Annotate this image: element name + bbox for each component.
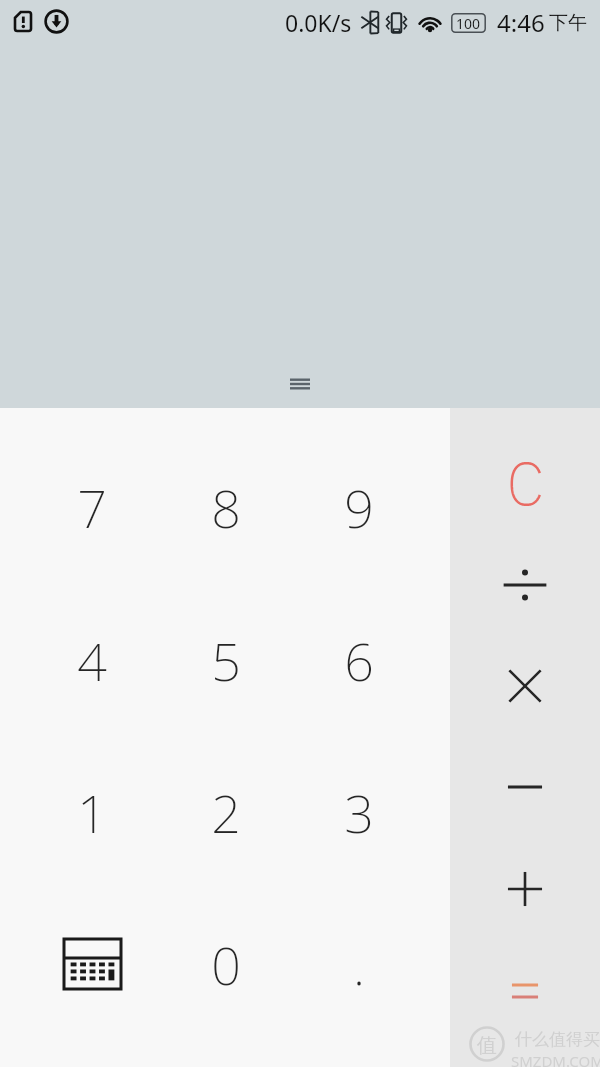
- staticText: 0: [211, 929, 241, 1000]
- staticText: 6: [344, 625, 374, 696]
- button[interactable]: Multiply: [450, 635, 600, 736]
- staticText: 1: [77, 777, 107, 848]
- staticText: 9: [344, 472, 374, 543]
- button[interactable]: Divide: [450, 534, 600, 635]
- button[interactable]: 0: [159, 888, 292, 1040]
- staticText: 2: [211, 777, 241, 848]
- staticText: 4: [77, 625, 107, 696]
- staticText: 100: [456, 14, 481, 33]
- staticText: 3: [344, 777, 374, 848]
- staticText: 值: [477, 1033, 497, 1058]
- staticText: 7: [77, 472, 107, 543]
- button[interactable]: 2: [159, 736, 292, 888]
- staticText: 下午: [549, 11, 587, 35]
- button[interactable]: .: [292, 888, 425, 1040]
- staticText: 0.0K/s: [285, 7, 352, 38]
- staticText: SMZDM.COM: [511, 1051, 600, 1067]
- button[interactable]: Clear: [450, 433, 600, 534]
- button[interactable]: 1: [25, 736, 159, 888]
- button[interactable]: Subtract: [450, 736, 600, 838]
- button[interactable]: 4: [25, 584, 159, 736]
- button[interactable]: 5: [159, 584, 292, 736]
- button[interactable]: Equals: [450, 940, 600, 1042]
- staticText: 5: [211, 625, 241, 696]
- button[interactable]: 9: [292, 431, 425, 584]
- button[interactable]: 6: [292, 584, 425, 736]
- button[interactable]: Expand history: [270, 358, 330, 408]
- staticText: .: [353, 929, 365, 1000]
- button[interactable]: 3: [292, 736, 425, 888]
- staticText: 8: [211, 472, 241, 543]
- button[interactable]: 7: [25, 431, 159, 584]
- staticText: 什么值得买: [515, 1029, 600, 1050]
- button[interactable]: Add: [450, 838, 600, 940]
- button[interactable]: 8: [159, 431, 292, 584]
- staticText: 4:46: [497, 6, 545, 39]
- button[interactable]: Calculator mode: [25, 888, 159, 1040]
